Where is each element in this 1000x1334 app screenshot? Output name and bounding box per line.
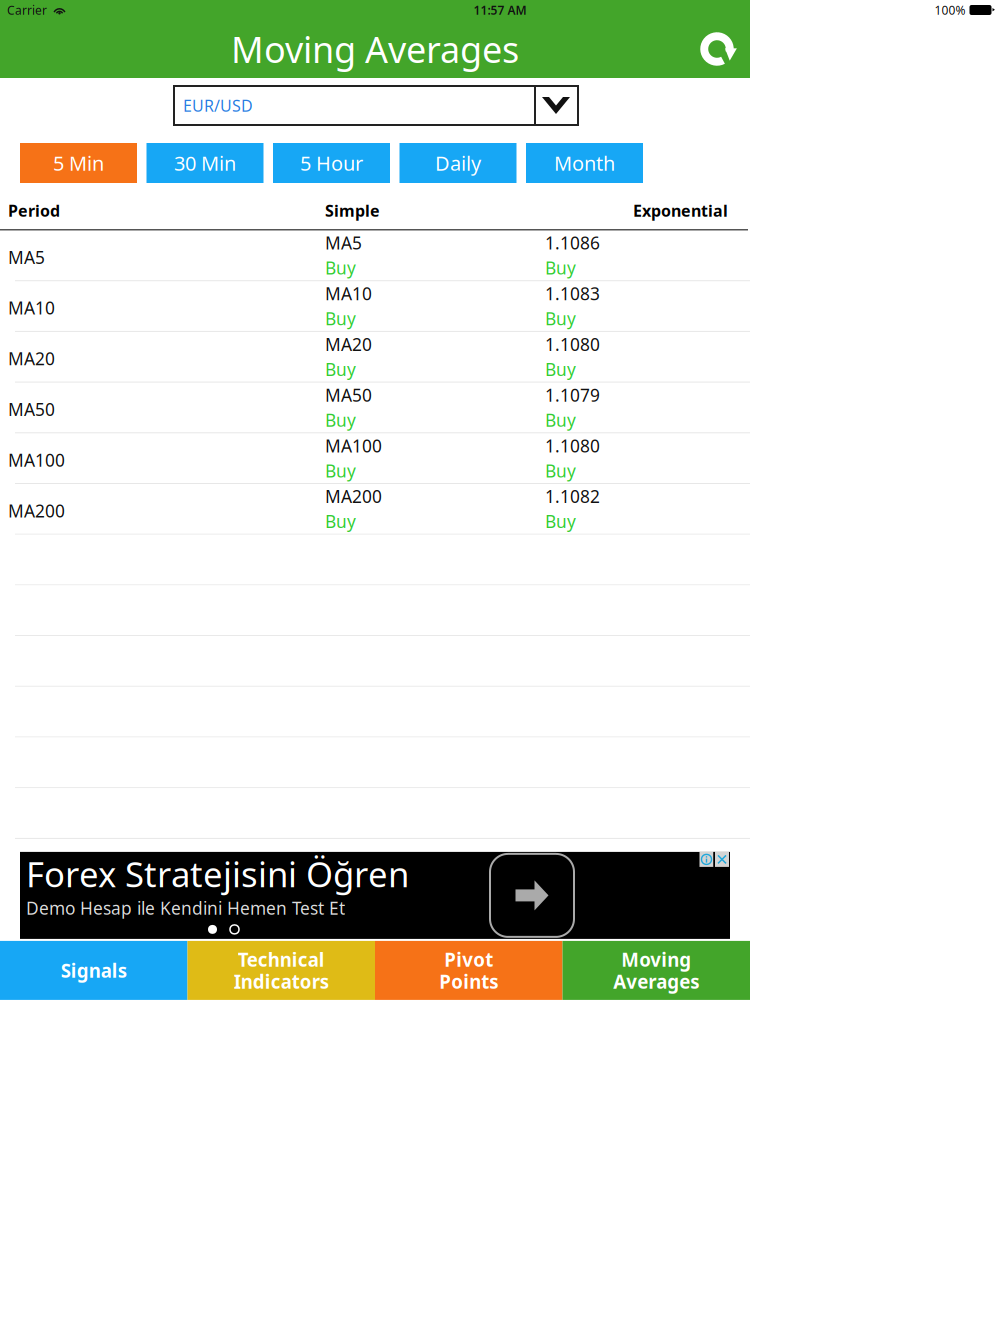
staticText: MA5 (8, 246, 45, 269)
staticText: MA50 (8, 398, 55, 421)
button[interactable]: Technical (187, 941, 375, 1000)
staticText: Period (8, 200, 60, 221)
button[interactable]: EUR/USD (174, 86, 578, 125)
staticText: 1.1079 (545, 383, 600, 406)
staticText: Buy (545, 510, 576, 533)
staticText: Forex Stratejisini Öğren (26, 851, 409, 897)
staticText: Signals (61, 958, 127, 983)
staticText: MA10 (325, 282, 372, 305)
staticText: 5 Min (53, 150, 104, 176)
button[interactable]: 5 Min (20, 143, 137, 183)
staticText: 30 Min (174, 150, 236, 176)
staticText: Buy (325, 459, 356, 482)
staticText: Buy (325, 256, 356, 279)
staticText: Simple (325, 200, 380, 221)
staticText: 11:57 AM (473, 2, 526, 18)
button[interactable]: Month (526, 143, 643, 183)
staticText: 1.1080 (545, 434, 600, 457)
staticText: Moving (621, 947, 691, 972)
button[interactable]: 30 Min (146, 143, 263, 183)
staticText: Points (439, 969, 498, 994)
button[interactable]: Refresh (684, 20, 750, 78)
staticText: Daily (435, 150, 481, 176)
staticText: MA200 (8, 499, 65, 522)
staticText: Month (554, 150, 615, 176)
staticText: Buy (545, 307, 576, 330)
staticText: Technical (238, 947, 325, 972)
staticText: MA200 (325, 485, 382, 508)
button[interactable]: Moving (562, 941, 750, 1000)
staticText: Buy (325, 307, 356, 330)
staticText: Moving Averages (231, 25, 519, 73)
staticText: Carrier (7, 2, 47, 18)
staticText: Buy (325, 358, 356, 381)
staticText: Indicators (234, 969, 329, 994)
staticText: MA50 (325, 383, 372, 406)
staticText: Buy (545, 459, 576, 482)
staticText: 1.1082 (545, 485, 600, 508)
staticText: EUR/USD (183, 95, 253, 116)
staticText: Buy (545, 256, 576, 279)
staticText: 5 Hour (300, 150, 363, 176)
staticText: Averages (613, 969, 699, 994)
button[interactable]: Pivot (375, 941, 562, 1000)
button[interactable]: Signals (0, 941, 187, 1000)
staticText: MA20 (8, 347, 55, 370)
staticText: Buy (325, 510, 356, 533)
staticText: 100% (934, 2, 965, 18)
button[interactable]: 5 Hour (273, 143, 390, 183)
staticText: MA100 (8, 448, 65, 471)
staticText: 1.1086 (545, 231, 600, 254)
staticText: Exponential (633, 200, 728, 221)
staticText: Buy (545, 358, 576, 381)
button[interactable]: Daily (399, 143, 516, 183)
staticText: Buy (325, 408, 356, 431)
staticText: 1.1083 (545, 282, 600, 305)
staticText: Buy (545, 408, 576, 431)
staticText: MA5 (325, 231, 362, 254)
staticText: MA10 (8, 296, 55, 319)
staticText: MA20 (325, 333, 372, 356)
staticText: Pivot (444, 947, 493, 972)
staticText: MA100 (325, 434, 382, 457)
staticText: 1.1080 (545, 333, 600, 356)
staticText: Demo Hesap ile Kendini Hemen Test Et (26, 896, 345, 919)
